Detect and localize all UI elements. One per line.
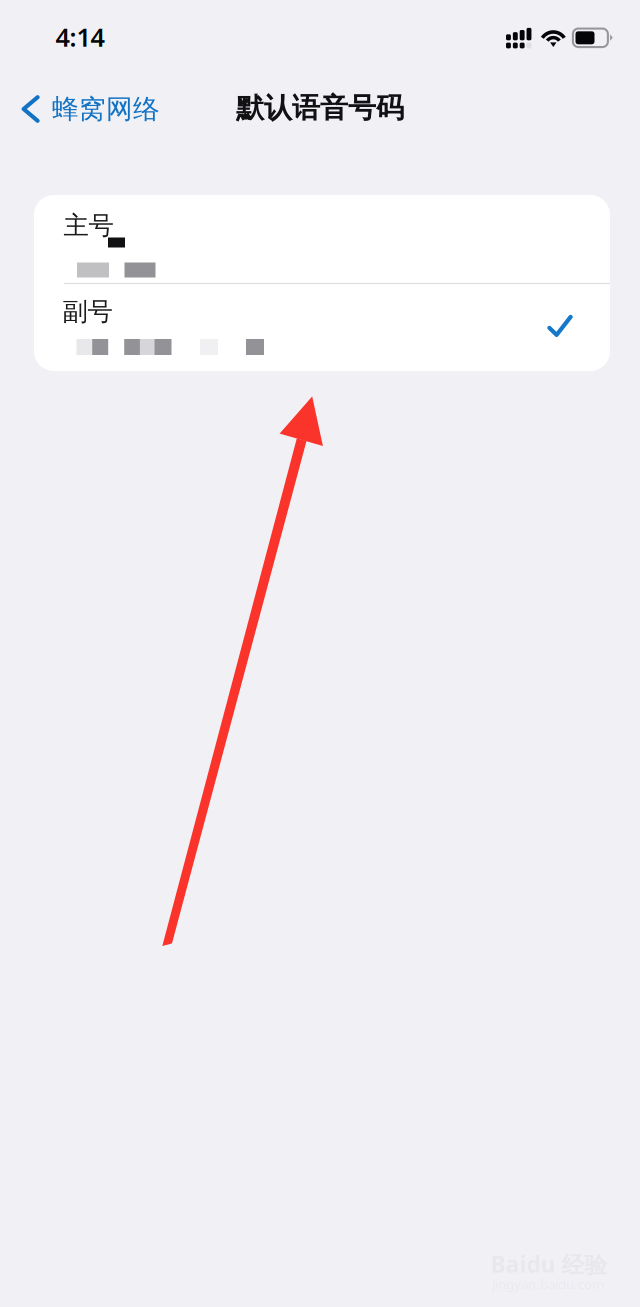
staticText: Baidu 经验 <box>490 1249 607 1279</box>
staticText: 蜂窝网络 <box>52 93 160 125</box>
staticText: 默认语音号码 <box>236 91 404 125</box>
staticText: 副号 <box>62 296 112 327</box>
button[interactable] <box>34 283 610 371</box>
staticText: 4:14 <box>55 20 104 54</box>
staticText: 主号 <box>63 210 113 241</box>
button[interactable]: 蜂窝网络 <box>0 86 180 132</box>
button[interactable] <box>34 195 610 283</box>
